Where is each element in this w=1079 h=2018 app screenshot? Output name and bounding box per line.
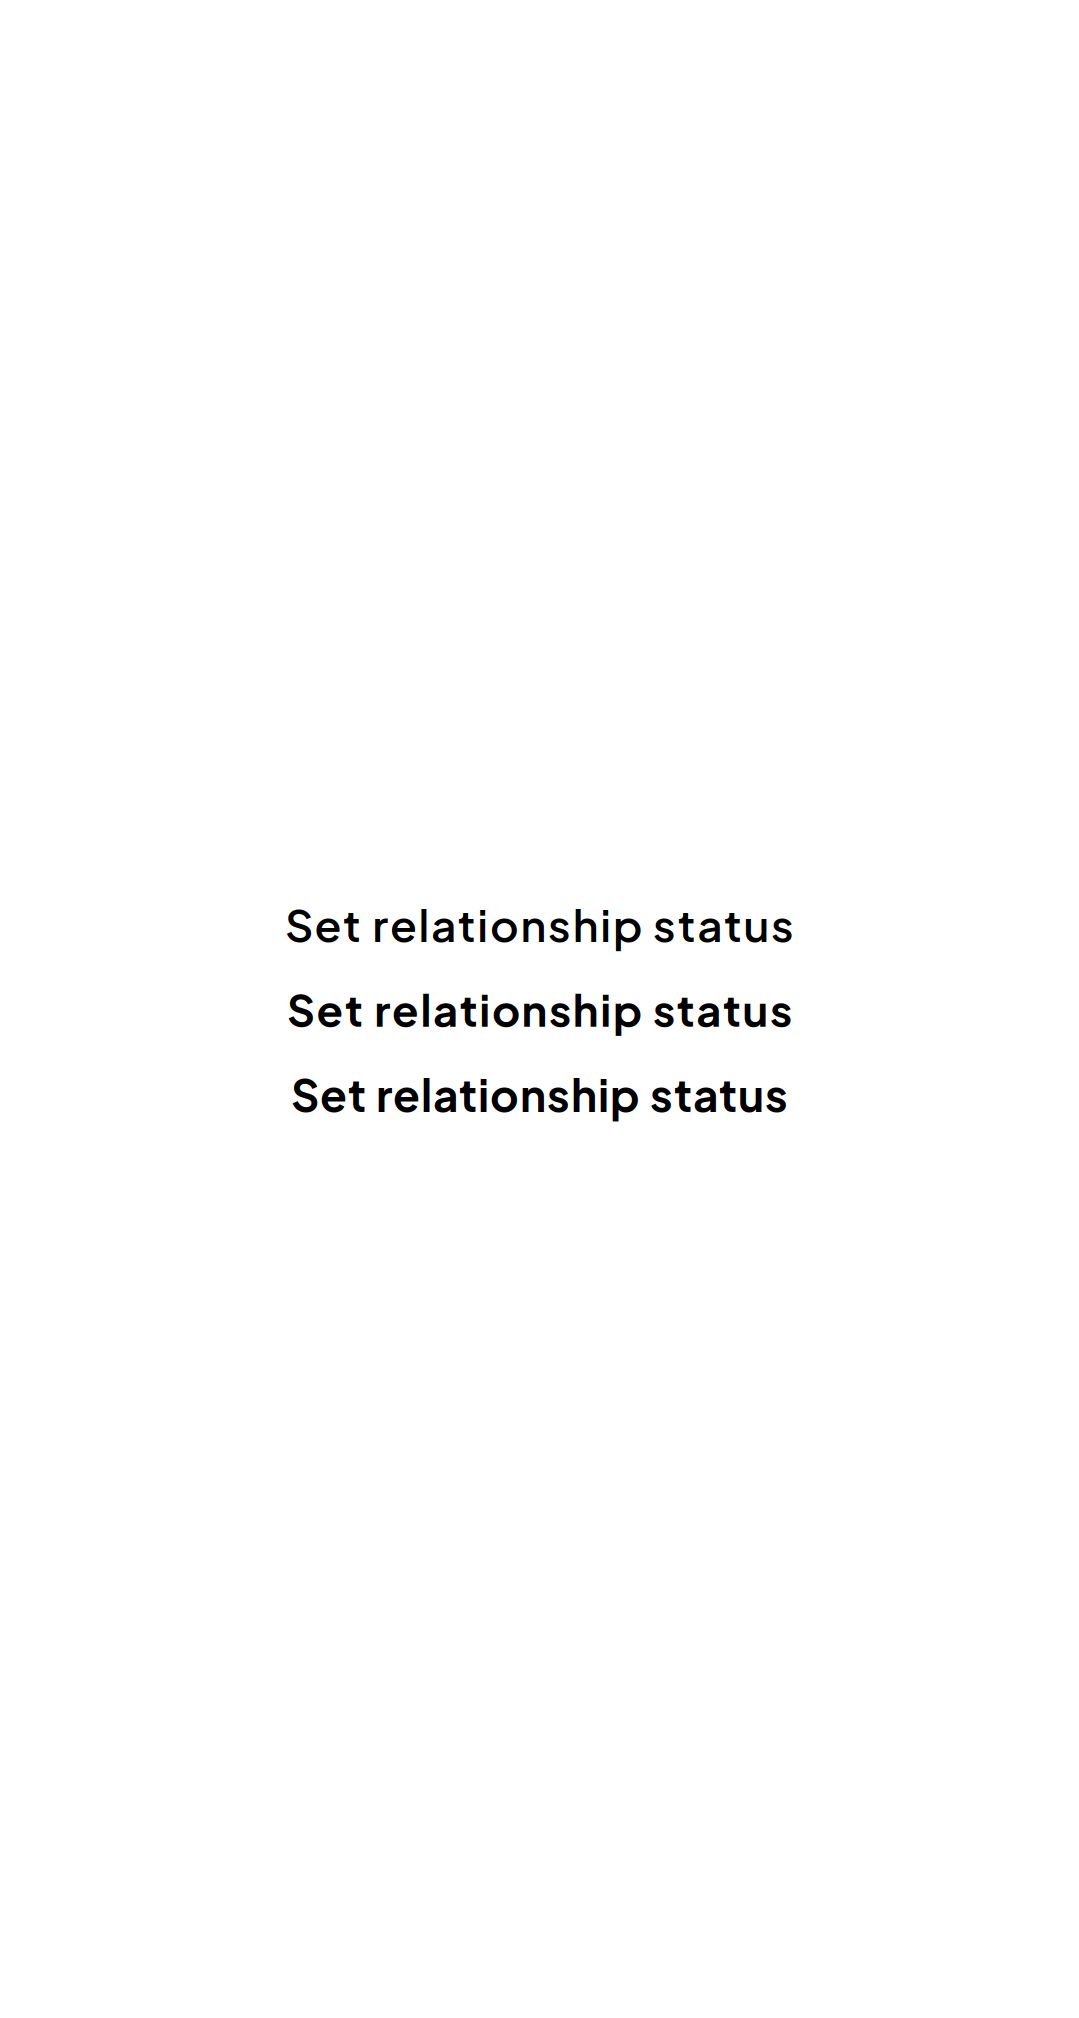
staticText: Set relationship status	[285, 896, 794, 952]
staticText: Set relationship status	[287, 982, 792, 1036]
staticText: Set relationship status	[291, 1066, 788, 1122]
